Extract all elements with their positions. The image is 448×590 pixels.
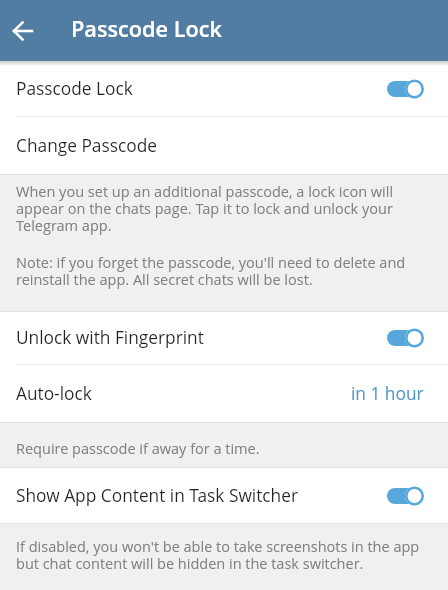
staticText: in 1 hour (351, 382, 424, 406)
staticText: Unlock with Fingerprint (16, 326, 204, 350)
staticText: Show App Content in Task Switcher (16, 484, 298, 508)
staticText: When you set up an additional passcode, … (16, 182, 394, 236)
button[interactable]: Unlock with Fingerprint (0, 312, 448, 364)
staticText: Passcode Lock (71, 14, 222, 44)
staticText: If disabled, you won't be able to take s… (16, 537, 420, 574)
staticText: Change Passcode (16, 134, 157, 158)
button[interactable]: Passcode Lock (0, 61, 448, 116)
staticText: Auto-lock (16, 382, 92, 406)
button[interactable]: Show App Content in Task Switcher (0, 468, 448, 523)
button[interactable]: Auto-lock (0, 365, 448, 422)
staticText: Note: if you forget the passcode, you'll… (16, 253, 406, 290)
button[interactable] (0, 0, 46, 61)
staticText: Require passcode if away for a time. (16, 439, 260, 459)
staticText: Passcode Lock (16, 77, 133, 101)
button[interactable]: Change Passcode (0, 117, 448, 174)
